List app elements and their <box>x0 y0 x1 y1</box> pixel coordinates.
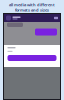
staticText: formats and sizes <box>15 7 49 13</box>
staticText: all media with different <box>9 2 55 7</box>
